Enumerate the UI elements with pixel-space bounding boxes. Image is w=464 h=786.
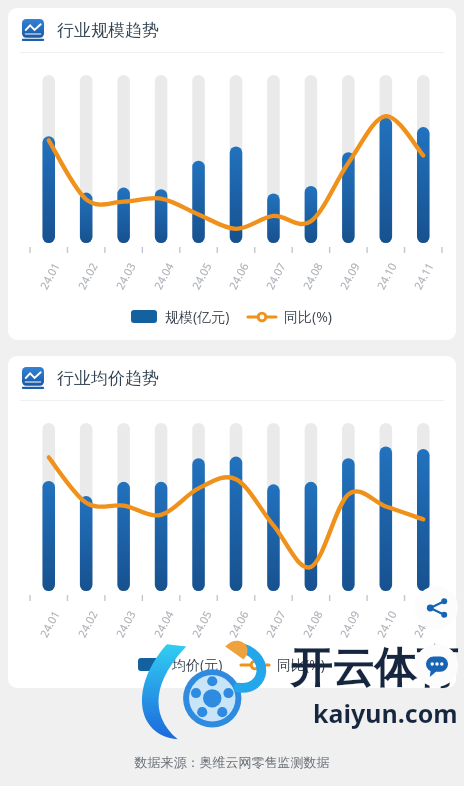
staticText: 24.04: [150, 259, 177, 292]
staticText: 24.07: [262, 607, 289, 640]
staticText: 24.04: [150, 607, 177, 640]
staticText: 24.08: [299, 607, 326, 640]
staticText: 24.07: [262, 259, 289, 292]
staticText: 24.06: [225, 607, 252, 640]
staticText: 24.05: [188, 607, 215, 640]
button[interactable]: 行业规模趋势: [8, 8, 456, 52]
staticText: 24.01: [36, 259, 63, 292]
button[interactable]: 行业均价趋势: [8, 356, 456, 400]
staticText: 同比(%): [284, 307, 333, 326]
staticText: 24.08: [299, 259, 326, 292]
staticText: 24.01: [36, 607, 63, 640]
staticText: 24.09: [336, 607, 363, 640]
staticText: 24.05: [188, 259, 215, 292]
staticText: 24.02: [74, 259, 101, 292]
staticText: 同比(%): [277, 655, 326, 674]
button[interactable]: Share: [415, 586, 458, 629]
staticText: 24.02: [74, 607, 101, 640]
staticText: 24.11: [410, 259, 437, 292]
staticText: 24.10: [373, 259, 400, 292]
staticText: 24.11: [410, 607, 437, 640]
staticText: 均价(元): [172, 655, 223, 674]
staticText: 24.10: [373, 607, 400, 640]
staticText: 24.03: [112, 607, 139, 640]
staticText: 24.03: [112, 259, 139, 292]
staticText: 规模(亿元): [165, 307, 230, 326]
staticText: 开云体育: [290, 642, 458, 695]
button[interactable]: Feedback: [415, 644, 458, 687]
staticText: kaiyun.com: [313, 696, 458, 730]
staticText: 24.09: [336, 259, 363, 292]
staticText: 24.06: [225, 259, 252, 292]
staticText: 行业规模趋势: [57, 20, 159, 41]
staticText: 行业均价趋势: [57, 368, 159, 389]
staticText: 数据来源：奥维云网零售监测数据: [0, 754, 464, 770]
